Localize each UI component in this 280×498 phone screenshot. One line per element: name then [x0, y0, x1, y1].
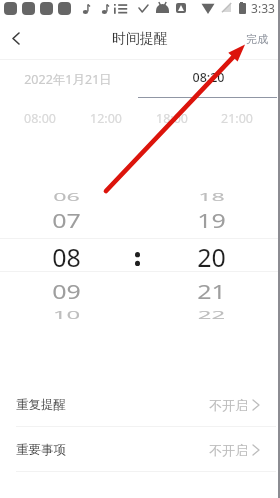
staticText: 不开启 [209, 397, 248, 413]
button[interactable]: 07 [26, 203, 106, 237]
button[interactable]: 21 [171, 274, 251, 308]
button[interactable]: 20 [171, 240, 251, 274]
button[interactable]: 22 [171, 298, 251, 332]
button[interactable]: 06 [26, 179, 106, 213]
button[interactable]: 重复提醒 [0, 382, 280, 427]
staticText: 不开启 [209, 442, 248, 458]
staticText: 时间提醒 [112, 30, 168, 48]
staticText: 10 [53, 308, 80, 322]
button[interactable]: Back [0, 18, 32, 59]
staticText: 08:00 [24, 110, 56, 127]
button[interactable]: 10 [26, 298, 106, 332]
button[interactable]: 09 [26, 274, 106, 308]
staticText: 08 [52, 240, 81, 274]
staticText: 重复提醒 [16, 397, 66, 413]
button[interactable]: 19 [171, 203, 251, 237]
staticText: 3:33 [251, 0, 275, 16]
staticText: 06 [53, 188, 80, 204]
button[interactable]: 重要事项 [0, 427, 280, 472]
button[interactable]: 完成 [246, 18, 268, 59]
button[interactable]: 08:20 [138, 59, 277, 97]
staticText: 2022年1月21日 [24, 71, 112, 88]
button[interactable]: 18 [171, 179, 251, 213]
staticText: 12:00 [90, 110, 122, 127]
staticText: 18 [198, 188, 225, 204]
staticText: 18:00 [156, 110, 188, 127]
staticText: 重要事项 [16, 442, 66, 458]
staticText: 20 [197, 240, 226, 274]
staticText: 08:20 [192, 69, 225, 86]
staticText: 21 [197, 278, 226, 304]
staticText: 19 [197, 207, 226, 233]
staticText: 07 [52, 207, 81, 233]
button[interactable]: 2022年1月21日 [0, 59, 138, 97]
button[interactable]: 08 [26, 240, 106, 274]
staticText: 完成 [246, 32, 268, 46]
staticText: 21:00 [221, 110, 253, 127]
staticText: 09 [52, 278, 81, 304]
staticText: 22 [198, 308, 225, 322]
